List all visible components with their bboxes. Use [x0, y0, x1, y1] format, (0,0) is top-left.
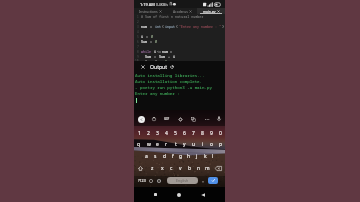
button[interactable]: o: [207, 139, 216, 150]
staticText: 3: [137, 25, 139, 29]
button[interactable]: 8: [198, 128, 207, 139]
staticText: 4: [137, 30, 139, 34]
button[interactable]: t: [171, 139, 180, 150]
staticText: 5: [174, 130, 177, 137]
staticText: 2: [137, 20, 139, 24]
button[interactable]: g: [177, 150, 185, 162]
button[interactable]: k: [201, 150, 209, 162]
staticText: w: [147, 141, 151, 148]
staticText: z: [151, 165, 154, 172]
button[interactable]: l: [209, 150, 217, 162]
button[interactable]: Instructions: [134, 8, 167, 14]
button[interactable]: 1: [134, 128, 144, 139]
button[interactable]: Shift: [134, 162, 147, 174]
staticText: 7: [137, 45, 139, 49]
button[interactable]: Recents: [154, 193, 157, 196]
button[interactable]: z: [147, 162, 157, 174]
staticText: n: [197, 165, 201, 172]
button[interactable]: main.py: [197, 8, 225, 14]
button[interactable]: m: [203, 162, 212, 174]
button[interactable]: Close output: [141, 65, 145, 69]
staticText: q: [137, 141, 141, 148]
button[interactable]: 6: [180, 128, 189, 139]
staticText: 0.4KB/s: [156, 2, 168, 7]
button[interactable]: Clipboard: [152, 117, 156, 121]
button[interactable]: d: [160, 150, 169, 162]
button[interactable]: Acoder.us: [167, 8, 197, 14]
button[interactable]: Back: [201, 193, 205, 197]
button[interactable]: c: [167, 162, 176, 174]
button[interactable]: x: [157, 162, 167, 174]
staticText: 1: [138, 130, 141, 137]
staticText: j: [196, 153, 198, 160]
button[interactable]: 2: [144, 128, 153, 139]
staticText: - poetry run python3 -u main.py: [135, 85, 213, 91]
button[interactable]: Translate: [191, 117, 196, 122]
staticText: i: [141, 34, 146, 39]
button[interactable]: Home: [177, 193, 181, 197]
button[interactable]: i: [198, 139, 207, 150]
button[interactable]: Expand toolbar: [138, 116, 145, 123]
staticText: Sum: [141, 39, 150, 44]
staticText: 7: [192, 130, 195, 137]
button[interactable]: q: [134, 139, 144, 150]
button[interactable]: h: [185, 150, 193, 162]
staticText: s: [154, 153, 157, 160]
staticText: i: [202, 141, 204, 148]
button[interactable]: u: [189, 139, 198, 150]
button[interactable]: Period: [201, 179, 205, 183]
staticText: main.py: [203, 9, 216, 13]
button[interactable]: 9: [207, 128, 216, 139]
staticText: m: [205, 165, 210, 172]
button[interactable]: Settings: [178, 117, 183, 122]
button[interactable]: 3: [153, 128, 162, 139]
button[interactable]: n: [194, 162, 203, 174]
button[interactable]: ?123: [137, 174, 146, 187]
button[interactable]: 4: [162, 128, 171, 139]
button[interactable]: Enter: [208, 177, 218, 184]
staticText: 1: [165, 59, 168, 61]
button[interactable]: a: [142, 150, 151, 162]
button[interactable]: v: [176, 162, 185, 174]
button[interactable]: Language: [156, 178, 162, 184]
button[interactable]: y: [180, 139, 189, 150]
button[interactable]: English: [167, 177, 198, 184]
staticText: b: [188, 165, 192, 172]
button[interactable]: j: [193, 150, 201, 162]
staticText: 6: [183, 130, 186, 137]
staticText: d: [163, 153, 167, 160]
staticText: 0: [155, 39, 158, 44]
button[interactable]: 0: [216, 128, 225, 139]
staticText: g: [179, 153, 183, 160]
button[interactable]: 5: [171, 128, 180, 139]
staticText: i: [154, 49, 157, 54]
staticText: k: [204, 153, 207, 160]
button[interactable]: Voice input: [217, 116, 221, 122]
button[interactable]: Backspace: [212, 162, 225, 174]
staticText: h: [187, 153, 191, 160]
button[interactable]: r: [162, 139, 171, 150]
button[interactable]: e: [153, 139, 162, 150]
button[interactable]: w: [144, 139, 153, 150]
button[interactable]: Rerun: [170, 65, 174, 69]
button[interactable]: p: [216, 139, 225, 150]
button[interactable]: b: [185, 162, 194, 174]
button[interactable]: 7: [189, 128, 198, 139]
staticText: a: [145, 153, 148, 160]
staticText: 4: [165, 130, 168, 137]
button[interactable]: Emoji: [149, 179, 153, 183]
staticText: 8: [137, 50, 139, 54]
staticText: English: [176, 178, 189, 183]
button[interactable]: f: [169, 150, 177, 162]
button[interactable]: s: [151, 150, 160, 162]
staticText: Acoder.us: [173, 9, 188, 13]
staticText: =: [150, 24, 155, 29]
staticText: v: [179, 165, 182, 172]
button[interactable]: GIF: [164, 117, 170, 121]
staticText: e: [156, 141, 159, 148]
staticText: y: [183, 141, 186, 148]
staticText: =: [154, 54, 159, 59]
staticText: Output: [150, 64, 168, 71]
button[interactable]: More options: [204, 118, 209, 121]
staticText: f: [172, 153, 174, 160]
